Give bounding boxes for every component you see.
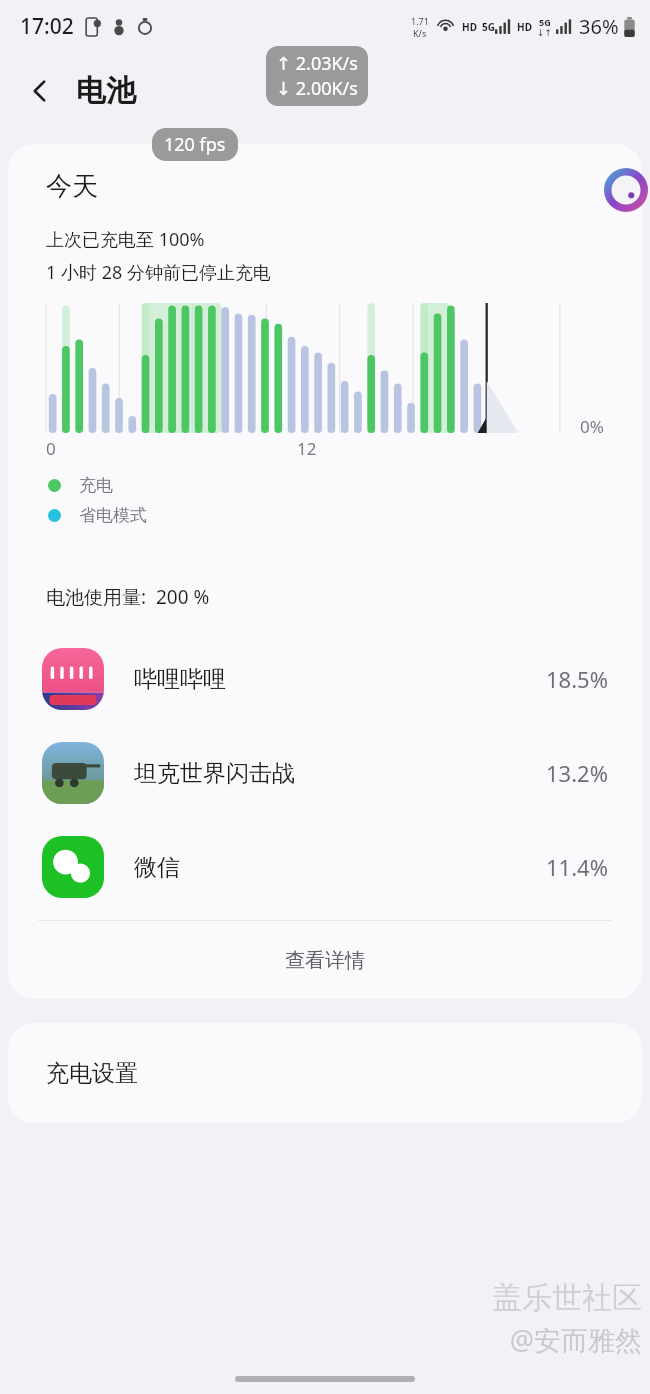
staticText: 12 xyxy=(297,437,317,460)
staticText: 36% xyxy=(579,13,619,40)
button[interactable]: 微信 xyxy=(8,820,642,914)
staticText: 17:02 xyxy=(20,12,74,41)
staticText: 上次已充电至 100% xyxy=(46,227,205,252)
staticText: 0% xyxy=(580,415,604,438)
button[interactable]: 哔哩哔哩 xyxy=(8,632,642,726)
staticText: 120 fps xyxy=(164,132,226,157)
staticText: 11.4% xyxy=(546,852,608,882)
staticText: HD xyxy=(462,20,477,34)
staticText: 电池使用量: 200 % xyxy=(46,584,210,610)
button[interactable]: Floating assistant xyxy=(604,168,648,212)
staticText: 充电设置 xyxy=(46,1059,138,1088)
staticText: 1 小时 28 分钟前已停止充电 xyxy=(46,260,271,285)
staticText: HD xyxy=(517,20,532,34)
staticText: @安而雅然 xyxy=(509,1321,642,1358)
staticText: 5G xyxy=(482,20,495,34)
staticText: 哔哩哔哩 xyxy=(134,665,226,694)
staticText: 1.71 xyxy=(411,15,429,27)
staticText: 5G xyxy=(539,16,551,28)
staticText: ↓↑ xyxy=(537,28,553,38)
staticText: 13.2% xyxy=(546,758,608,788)
staticText: 0 xyxy=(46,437,56,460)
button[interactable]: 坦克世界闪击战 xyxy=(8,726,642,820)
staticText: 充电 xyxy=(79,475,113,496)
staticText: 盖乐世社区 xyxy=(492,1279,642,1317)
staticText: ↓ 2.00K/s xyxy=(276,76,358,101)
button[interactable]: 充电设置 xyxy=(8,1023,642,1123)
staticText: 坦克世界闪击战 xyxy=(134,759,295,788)
staticText: 微信 xyxy=(134,853,180,882)
staticText: 省电模式 xyxy=(79,505,147,526)
staticText: K/s xyxy=(413,27,427,39)
button[interactable]: 查看详情 xyxy=(8,921,642,999)
staticText: ↑ 2.03K/s xyxy=(276,51,358,76)
staticText: 18.5% xyxy=(546,664,608,694)
staticText: 今天 xyxy=(46,170,98,203)
button[interactable]: Back xyxy=(12,63,68,119)
staticText: 电池 xyxy=(76,72,136,110)
staticText: 查看详情 xyxy=(285,948,365,973)
